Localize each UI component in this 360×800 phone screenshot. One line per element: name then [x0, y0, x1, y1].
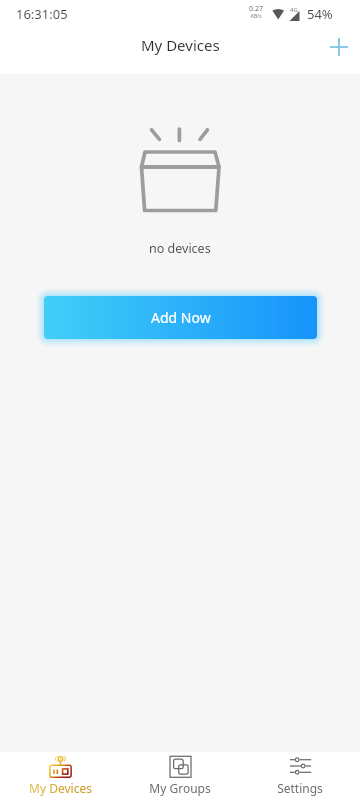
staticText: 4G — [290, 6, 298, 14]
staticText: Settings — [277, 780, 323, 796]
staticText: 16:31:05 — [16, 5, 68, 23]
button[interactable]: Add device — [317, 25, 360, 69]
button[interactable]: Add Now — [44, 296, 317, 339]
staticText: My Devices — [29, 780, 92, 796]
staticText: 54% — [307, 5, 333, 23]
button[interactable]: My Groups — [120, 752, 240, 800]
staticText: My Groups — [149, 780, 211, 796]
staticText: Add Now — [151, 308, 211, 327]
staticText: no devices — [149, 240, 211, 257]
button[interactable]: Settings — [240, 752, 360, 800]
staticText: My Devices — [141, 35, 220, 55]
button[interactable]: My Devices — [0, 752, 120, 800]
staticText: KB/s — [251, 13, 262, 20]
staticText: 0.27 — [249, 4, 263, 14]
